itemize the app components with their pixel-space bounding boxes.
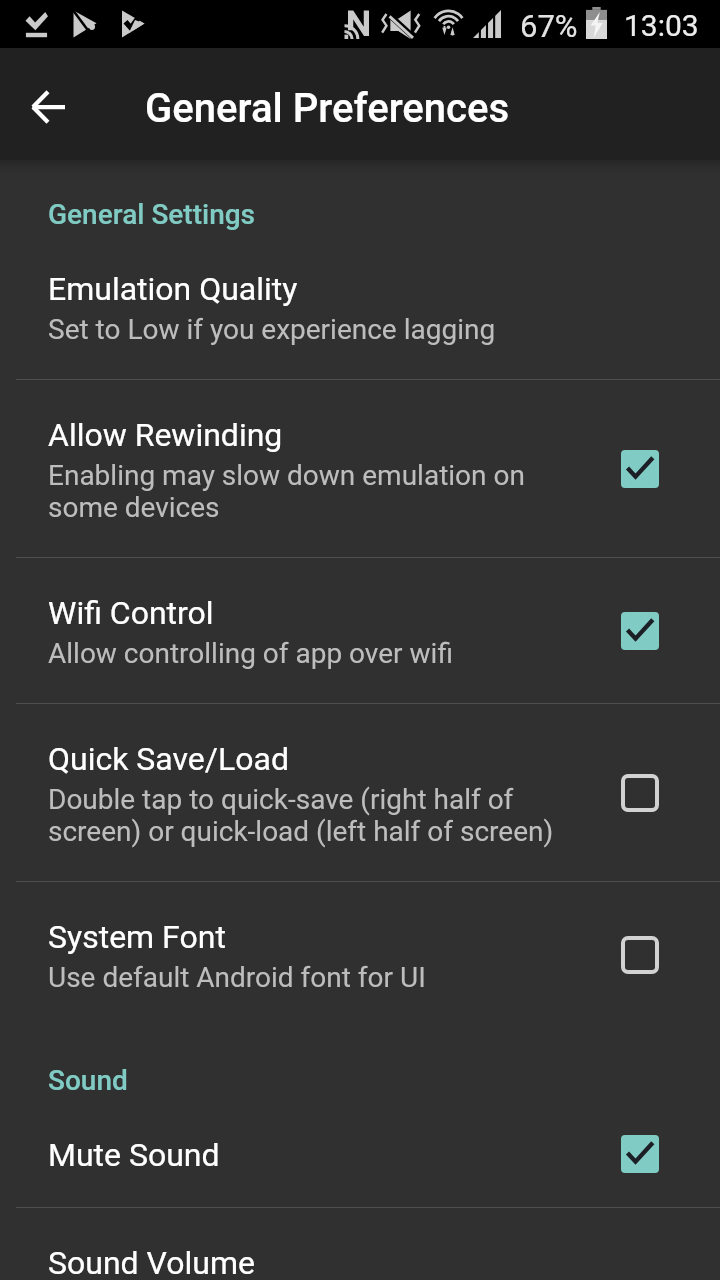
button[interactable]: Mute Sound bbox=[0, 1100, 720, 1207]
staticText: Use default Android font for UI bbox=[48, 962, 426, 994]
staticText: 67% bbox=[520, 8, 578, 44]
staticText: Sound bbox=[48, 1064, 128, 1097]
staticText: Allow Rewinding bbox=[48, 416, 283, 454]
button[interactable]: Emulation Quality bbox=[0, 234, 720, 379]
staticText: screen) or quick-load (left half of scre… bbox=[48, 816, 554, 848]
staticText: Quick Save/Load bbox=[48, 740, 289, 778]
staticText: Set to Low if you experience lagging bbox=[48, 314, 496, 346]
staticText: Wifi Control bbox=[48, 594, 214, 632]
staticText: System Font bbox=[48, 918, 226, 956]
button[interactable]: Toggle System Font bbox=[612, 927, 668, 983]
staticText: Sound Volume bbox=[48, 1244, 255, 1280]
button[interactable]: Back bbox=[8, 67, 88, 147]
staticText: Double tap to quick-save (right half of bbox=[48, 784, 514, 816]
staticText: General Preferences bbox=[145, 85, 510, 132]
button[interactable]: System Font bbox=[0, 882, 720, 1027]
button[interactable]: Sound Volume bbox=[0, 1208, 720, 1280]
staticText: 13:03 bbox=[624, 8, 699, 43]
staticText: Emulation Quality bbox=[48, 270, 298, 308]
staticText: Allow controlling of app over wifi bbox=[48, 638, 453, 670]
staticText: Enabling may slow down emulation on bbox=[48, 460, 525, 492]
button[interactable]: Toggle Allow Rewinding bbox=[612, 441, 668, 497]
staticText: some devices bbox=[48, 492, 220, 524]
button[interactable]: Wifi Control bbox=[0, 558, 720, 703]
button[interactable]: Quick Save/Load bbox=[0, 704, 720, 881]
staticText: General Settings bbox=[48, 198, 256, 231]
staticText: Mute Sound bbox=[48, 1136, 220, 1174]
button[interactable]: Toggle Quick Save/Load bbox=[612, 765, 668, 821]
button[interactable]: Toggle Wifi Control bbox=[612, 603, 668, 659]
button[interactable]: Toggle Mute Sound bbox=[612, 1126, 668, 1182]
button[interactable]: Allow Rewinding bbox=[0, 380, 720, 557]
